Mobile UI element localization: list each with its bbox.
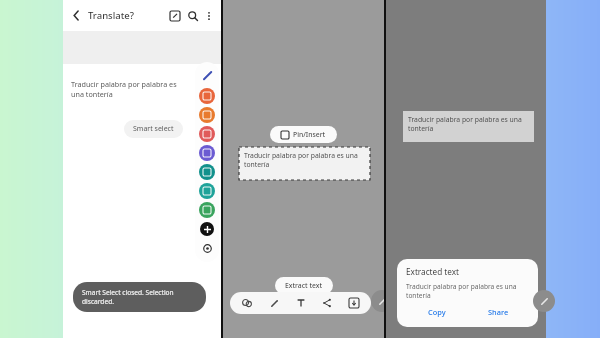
button[interactable]: Live message xyxy=(199,145,215,161)
staticText: Copy xyxy=(428,307,446,317)
button[interactable]: Save xyxy=(344,293,364,313)
button[interactable]: Pin/Insert xyxy=(270,126,337,143)
staticText: Smart select xyxy=(133,124,174,134)
staticText: Pin/Insert xyxy=(293,130,326,139)
staticText: Share xyxy=(488,307,509,317)
button[interactable]: Bixby Vision xyxy=(199,202,215,218)
button[interactable]: Shapes xyxy=(237,293,257,313)
button[interactable]: Traducir palabra por palabra es una tont… xyxy=(403,111,534,142)
button[interactable]: Translate xyxy=(199,164,215,180)
button[interactable]: Back xyxy=(68,7,85,24)
button[interactable]: Extracted text xyxy=(397,259,538,327)
button[interactable]: Screen write xyxy=(199,126,215,142)
button[interactable]: Smart select xyxy=(199,107,215,123)
button[interactable]: Smart select xyxy=(124,120,183,138)
staticText: Traducir palabra por palabra es una tont… xyxy=(406,282,529,300)
staticText: Traducir palabra por palabra es una tont… xyxy=(71,79,185,99)
button[interactable]: Smart Select closed. Selection discarded… xyxy=(73,282,206,312)
button[interactable]: Search xyxy=(184,7,202,25)
button[interactable]: Traducir palabra por palabra es una tont… xyxy=(239,147,370,180)
button[interactable]: PENUP xyxy=(199,183,215,199)
button[interactable]: Extract text xyxy=(275,277,333,294)
button[interactable]: S Pen xyxy=(198,66,217,85)
button[interactable]: Copy xyxy=(406,307,467,317)
button[interactable]: Text xyxy=(291,293,311,313)
staticText: Translate? xyxy=(88,9,135,22)
staticText: Traducir palabra por palabra es una tont… xyxy=(244,151,366,169)
button[interactable]: Settings xyxy=(200,241,214,255)
button[interactable]: More options xyxy=(202,9,216,23)
button[interactable]: Share xyxy=(317,293,337,313)
button[interactable]: Share xyxy=(467,307,529,317)
button[interactable]: Create note xyxy=(199,88,215,104)
staticText: Extracted text xyxy=(406,266,460,277)
button[interactable]: Pen xyxy=(533,290,555,312)
button[interactable]: Pen xyxy=(264,293,284,313)
button[interactable]: Pen xyxy=(371,290,393,312)
button[interactable]: Add xyxy=(200,222,214,236)
staticText: Traducir palabra por palabra es una tont… xyxy=(408,115,530,133)
staticText: Smart Select closed. Selection discarded… xyxy=(82,288,197,306)
staticText: Extract text xyxy=(285,281,323,290)
button[interactable]: Edit xyxy=(166,7,184,25)
